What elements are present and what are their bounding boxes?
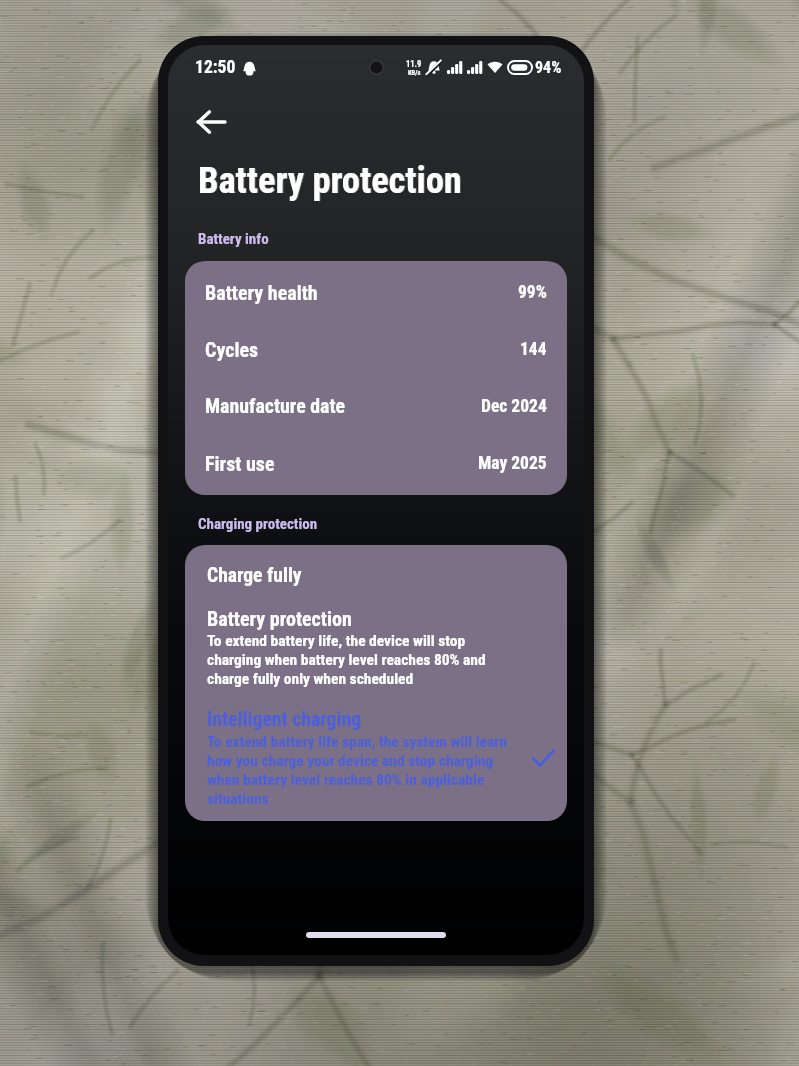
button[interactable]: Charge fully — [185, 545, 567, 605]
staticText: Battery protection — [207, 607, 352, 630]
button[interactable]: First use — [185, 435, 567, 492]
button[interactable]: Cycles — [185, 321, 567, 378]
button[interactable]: Manufacture date — [185, 378, 567, 435]
staticText: To extend battery life span, the system … — [207, 733, 508, 808]
staticText: Battery info — [198, 230, 269, 248]
staticText: 94% — [535, 58, 562, 77]
staticText: Charge fully — [207, 564, 302, 587]
button[interactable]: Battery protection — [185, 605, 567, 702]
staticText: 144 — [520, 339, 547, 360]
staticText: Dec 2024 — [481, 396, 547, 417]
staticText: KB/s — [408, 69, 421, 77]
staticText: To extend battery life, the device will … — [207, 632, 486, 688]
button[interactable]: Battery health — [185, 264, 567, 321]
staticText: Charging protection — [198, 515, 318, 533]
staticText: 99% — [518, 282, 547, 303]
staticText: Manufacture date — [205, 395, 345, 418]
staticText: First use — [205, 452, 275, 475]
button[interactable]: Intelligent charging — [185, 702, 567, 821]
staticText: 12:50 — [195, 57, 236, 78]
staticText: Cycles — [205, 338, 259, 361]
button[interactable]: Back — [188, 99, 234, 145]
staticText: Intelligent charging — [207, 708, 362, 731]
other: Intelligent charging selected — [531, 746, 555, 770]
staticText: Battery protection — [198, 159, 462, 202]
staticText: 11.9 — [406, 59, 422, 69]
staticText: Battery protection — [199, 159, 463, 202]
staticText: May 2025 — [478, 453, 547, 474]
staticText: Battery health — [205, 281, 318, 304]
